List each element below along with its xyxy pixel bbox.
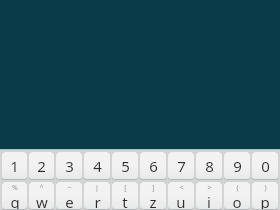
button[interactable]: ] (140, 182, 166, 210)
button[interactable]: ~ (56, 182, 82, 210)
button[interactable]: > (196, 182, 222, 210)
staticText: p (260, 192, 270, 209)
staticText: 2 (37, 156, 46, 176)
staticText: 0 (261, 156, 270, 176)
button[interactable]: [ (112, 182, 138, 210)
staticText: z (149, 192, 157, 209)
staticText: r (94, 192, 101, 209)
button[interactable]: 1 (2, 152, 27, 180)
button[interactable]: ) (252, 182, 278, 210)
button[interactable]: < (168, 182, 194, 210)
staticText: e (65, 192, 74, 209)
staticText: t (122, 192, 128, 209)
staticText: ( (236, 183, 239, 192)
button[interactable]: 4 (84, 152, 110, 180)
button[interactable]: 8 (196, 152, 222, 180)
staticText: 6 (149, 156, 158, 176)
button[interactable]: ( (224, 182, 250, 210)
staticText: [ (124, 183, 127, 192)
staticText: 3 (65, 156, 74, 176)
staticText: o (232, 192, 242, 209)
staticText: 9 (233, 156, 242, 176)
staticText: ^ (39, 183, 44, 192)
staticText: w (36, 192, 48, 209)
button[interactable]: ^ (29, 182, 54, 210)
staticText: q (10, 192, 20, 209)
button[interactable]: 0 (252, 152, 278, 180)
staticText: ~ (67, 183, 72, 192)
staticText: < (179, 183, 184, 192)
button[interactable]: 5 (112, 152, 138, 180)
button[interactable]: 2 (29, 152, 54, 180)
button[interactable]: 9 (224, 152, 250, 180)
staticText: 7 (177, 156, 186, 176)
button[interactable]: 3 (56, 152, 82, 180)
staticText: i (207, 192, 211, 209)
button[interactable]: 6 (140, 152, 166, 180)
staticText: 4 (93, 156, 102, 176)
staticText: 8 (205, 156, 214, 176)
staticText: ) (264, 183, 267, 192)
staticText: 1 (10, 156, 19, 176)
button[interactable]: % (2, 182, 27, 210)
button[interactable]: 7 (168, 152, 194, 180)
staticText: | (95, 183, 99, 192)
staticText: 5 (121, 156, 130, 176)
button[interactable]: | (84, 182, 110, 210)
staticText: % (12, 183, 18, 192)
staticText: u (176, 192, 186, 209)
staticText: > (207, 183, 212, 192)
staticText: ] (152, 183, 155, 192)
